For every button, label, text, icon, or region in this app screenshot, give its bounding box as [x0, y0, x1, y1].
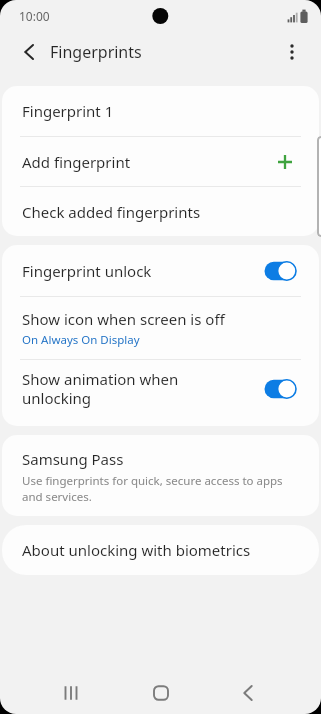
staticText: Add fingerprint — [22, 152, 131, 172]
staticText: Fingerprint 1 — [22, 101, 114, 121]
staticText: Fingerprints — [50, 41, 142, 63]
button[interactable] — [143, 675, 179, 711]
button[interactable] — [277, 37, 307, 67]
button[interactable]: Fingerprint 1 — [2, 86, 319, 136]
staticText: Use fingerprints for quick, secure acces… — [22, 473, 283, 504]
button[interactable] — [53, 675, 89, 711]
staticText: Show icon when screen is off — [22, 309, 225, 329]
button[interactable] — [230, 675, 266, 711]
staticText: Check added fingerprints — [22, 202, 201, 222]
staticText: Samsung Pass — [22, 449, 124, 469]
staticText: Show animation when unlocking — [22, 369, 179, 408]
button[interactable]: Add fingerprint — [2, 137, 319, 186]
button[interactable]: Fingerprint unlock — [2, 245, 319, 296]
button[interactable]: About unlocking with biometrics — [2, 525, 319, 575]
button[interactable]: Check added fingerprints — [2, 187, 319, 236]
staticText: About unlocking with biometrics — [22, 540, 251, 560]
staticText: On Always On Display — [22, 332, 140, 348]
staticText: 10:00 — [19, 8, 50, 24]
staticText: Fingerprint unlock — [22, 261, 152, 281]
button[interactable]: Show animation when unlocking — [2, 360, 319, 426]
button[interactable] — [10, 33, 48, 71]
button[interactable]: Samsung Pass — [2, 435, 319, 516]
button[interactable]: Show icon when screen is off — [2, 297, 319, 359]
